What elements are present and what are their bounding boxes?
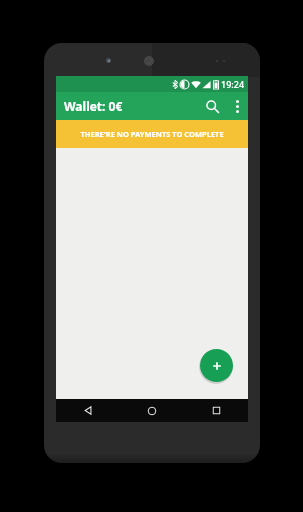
button[interactable]: Back [56,399,120,422]
button[interactable]: Search [198,92,226,120]
button[interactable]: Home [120,399,184,422]
staticText: THERE'RE NO PAYMENTS TO COMPLETE [80,129,224,139]
button[interactable]: Recent apps [184,399,248,422]
staticText: 19:24 [221,78,245,90]
button[interactable]: Add payment [200,349,233,382]
button[interactable]: More options [226,92,248,120]
staticText: Wallet: 0€ [64,98,123,114]
button[interactable]: THERE'RE NO PAYMENTS TO COMPLETE [56,120,248,148]
